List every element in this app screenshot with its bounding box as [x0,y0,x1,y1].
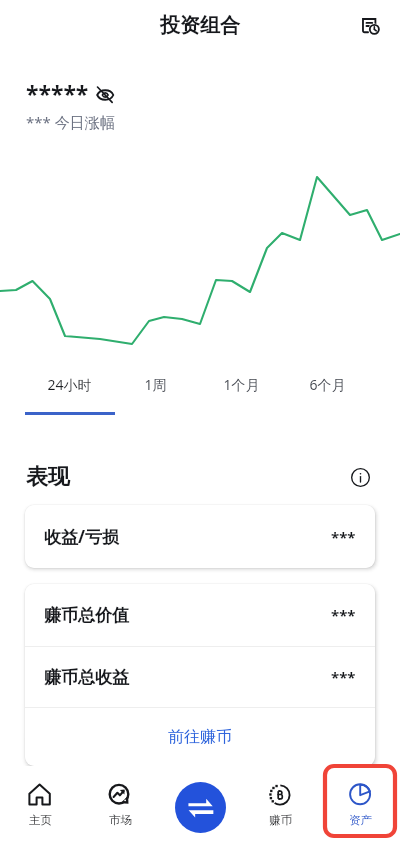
staticText: 收益/亏损 [44,525,120,548]
staticText: 赚币 [269,813,292,827]
button[interactable]: 1个月 [198,369,284,399]
button[interactable]: Info [347,464,373,490]
staticText: 赚币总收益 [44,667,129,688]
staticText: 1个月 [223,375,260,394]
staticText: 表现 [26,463,70,491]
staticText: 资产 [349,813,372,827]
button[interactable]: 市场 [80,766,160,843]
staticText: 前往赚币 [168,727,232,747]
button[interactable]: Hide balance [92,81,118,107]
button[interactable]: 24小时 [26,369,112,399]
staticText: 主页 [29,813,52,827]
button[interactable]: 1周 [112,369,198,399]
staticText: *** [331,667,356,687]
button[interactable]: 赚币总收益 [25,647,375,707]
button[interactable]: 前往赚币 [25,708,375,766]
button[interactable]: 赚币 [240,766,320,843]
staticText: *** [331,527,356,547]
button[interactable]: 6个月 [284,369,370,399]
staticText: 赚币总价值 [44,605,129,626]
button[interactable]: Transaction history [353,8,387,42]
button[interactable]: 资产 [320,766,400,843]
button[interactable]: 主页 [0,766,80,843]
button[interactable]: 收益/亏损 [25,505,375,568]
button[interactable]: Convert [175,782,226,833]
staticText: *** [331,605,356,625]
staticText: 24小时 [47,375,92,394]
staticText: 1周 [144,375,167,394]
staticText: *** 今日涨幅 [26,112,115,132]
staticText: 6个月 [309,375,346,394]
staticText: 投资组合 [160,13,240,38]
staticText: ***** [26,78,89,109]
button[interactable]: 赚币总价值 [25,584,375,646]
staticText: 市场 [109,813,132,827]
